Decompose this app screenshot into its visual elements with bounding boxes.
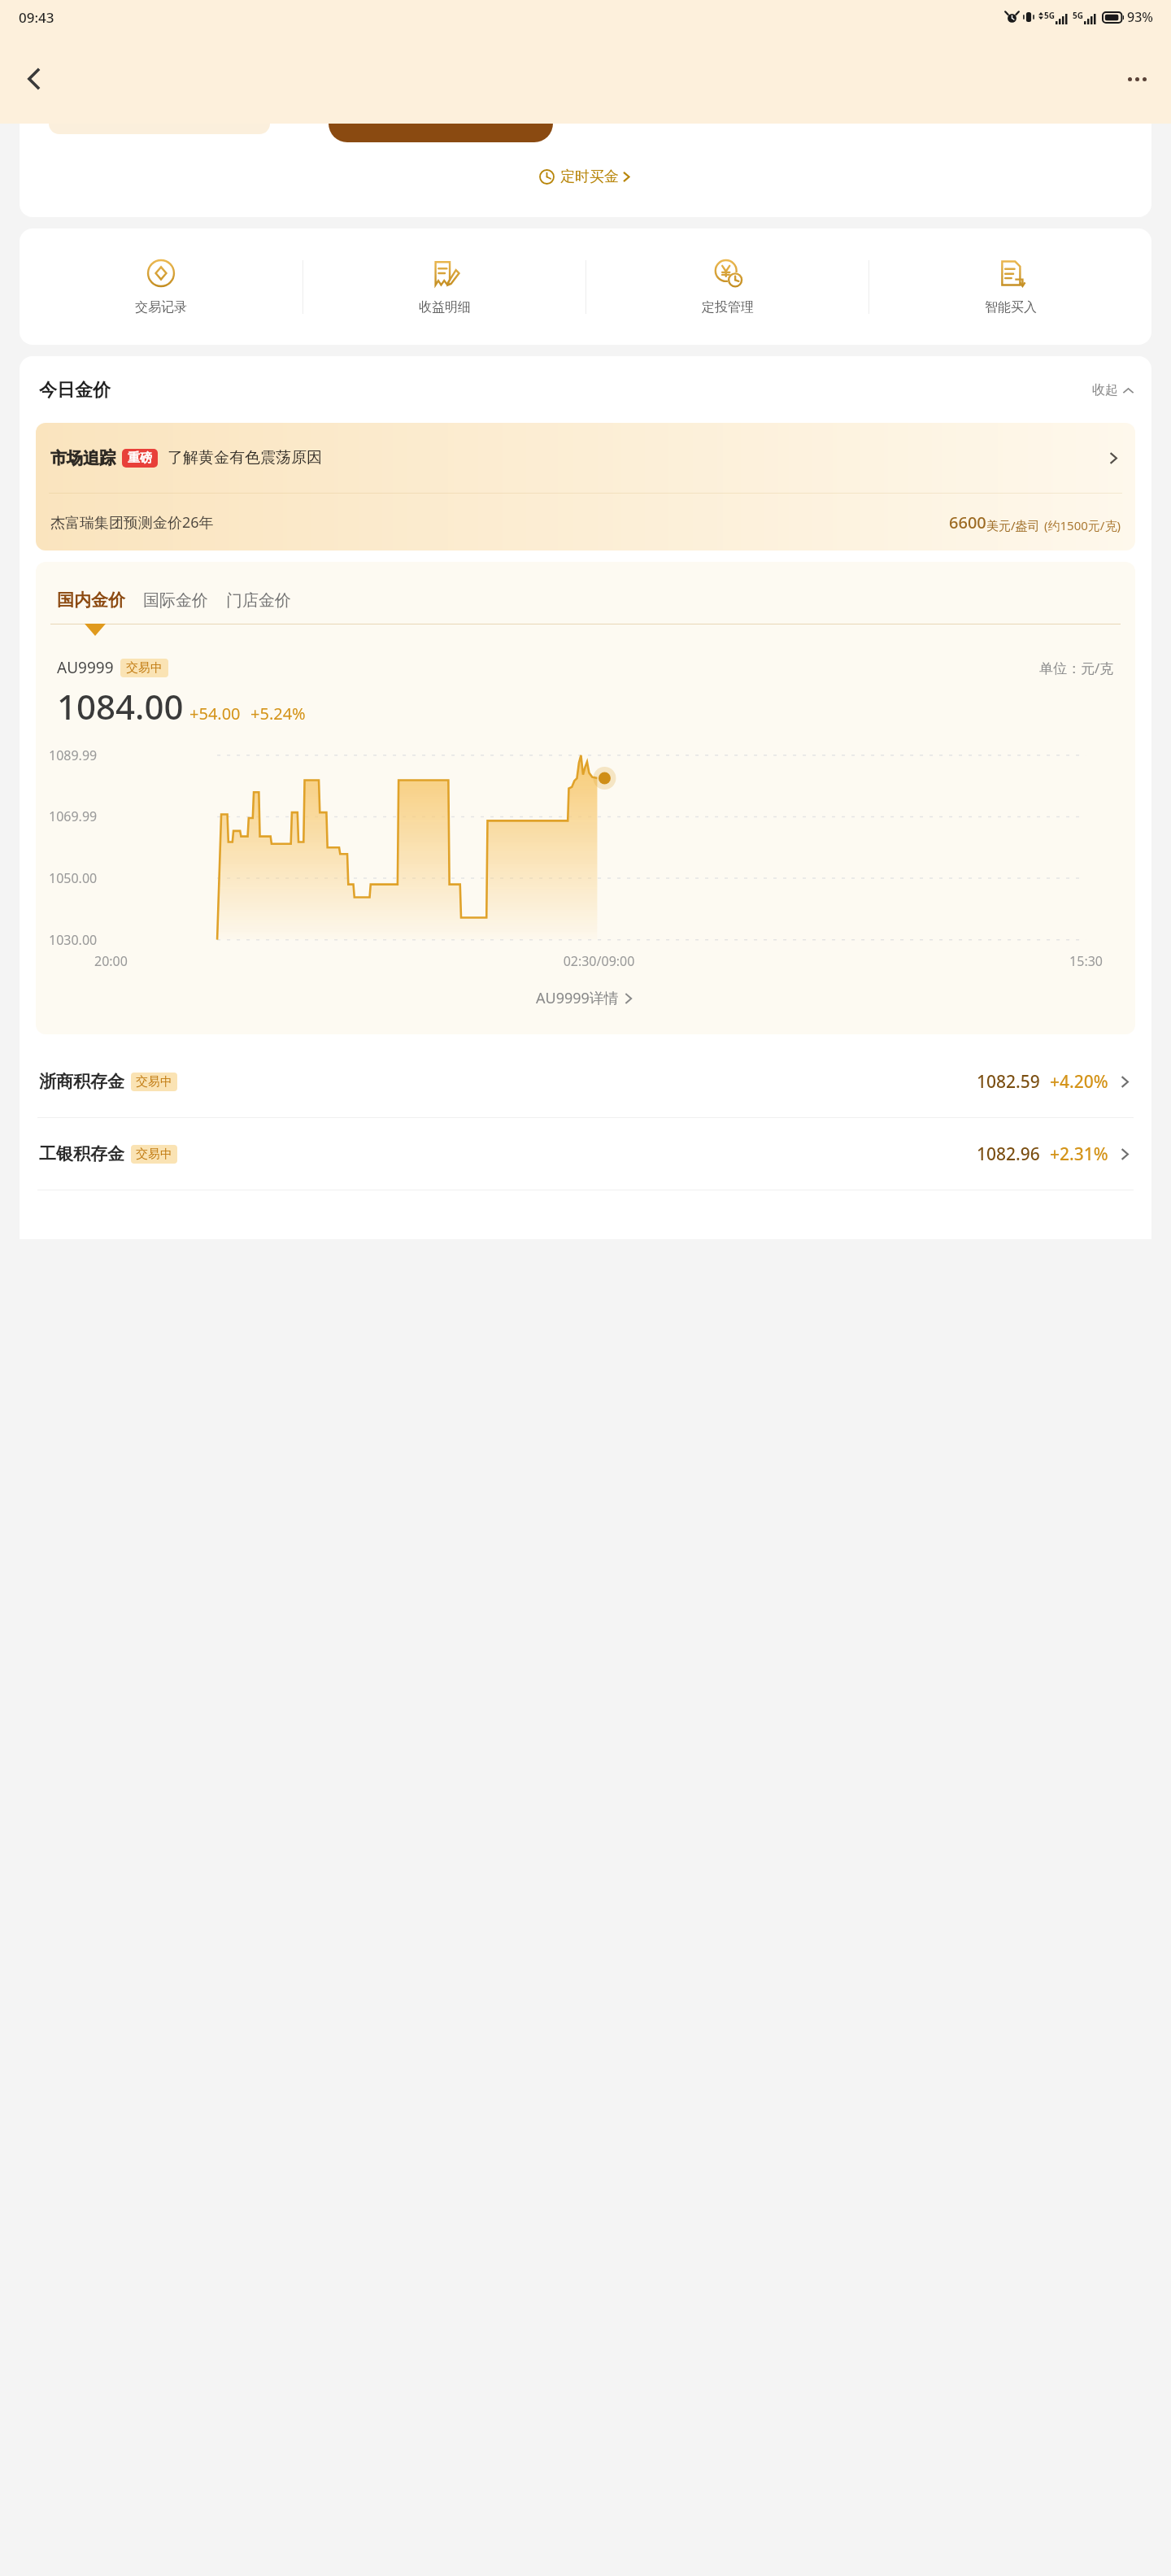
staticText: 收益明细: [419, 299, 471, 315]
staticText: 1050.00: [49, 869, 98, 887]
staticText: 15:30: [767, 952, 1103, 970]
button[interactable]: 国内金价: [57, 590, 125, 611]
staticText: 国际金价: [143, 590, 208, 611]
staticText: 国内金价: [57, 590, 125, 611]
button[interactable]: More options: [1114, 56, 1160, 102]
staticText: 6600: [949, 511, 986, 533]
button[interactable]: 国际金价: [143, 590, 208, 611]
staticText: 交易中: [126, 660, 163, 676]
staticText: AU9999详情: [536, 988, 619, 1008]
staticText: 1030.00: [49, 931, 98, 949]
staticText: 1082.96: [977, 1142, 1040, 1166]
staticText: 定时买金: [560, 168, 619, 186]
button[interactable]: 收起: [1092, 382, 1134, 398]
staticText: 工银积存金: [39, 1143, 124, 1164]
staticText: 今日金价: [39, 379, 111, 402]
staticText: 重磅: [128, 450, 152, 466]
staticText: 1089.99: [49, 746, 98, 764]
button[interactable]: 浙商积存金: [39, 1046, 1132, 1117]
staticText: 20:00: [94, 952, 431, 970]
button[interactable]: Back: [11, 56, 57, 102]
staticText: 浙商积存金: [39, 1071, 124, 1092]
staticText: 09:43: [19, 8, 54, 27]
staticText: 定投管理: [702, 299, 754, 315]
staticText: 5G: [1073, 10, 1083, 21]
staticText: 交易中: [136, 1147, 172, 1162]
staticText: 美元/盎司: [986, 517, 1040, 533]
staticText: 门店金价: [226, 590, 291, 611]
button[interactable]: 工银积存金: [39, 1118, 1132, 1190]
staticText: 交易记录: [135, 299, 187, 315]
staticText: 单位：元/克: [1039, 659, 1114, 677]
staticText: 02:30/09:00: [431, 952, 767, 970]
button[interactable]: 智能买入: [869, 228, 1151, 345]
staticText: 93%: [1127, 8, 1153, 26]
button[interactable]: 定投管理: [586, 228, 868, 345]
staticText: +2.31%: [1050, 1142, 1108, 1166]
staticText: 1082.59: [977, 1070, 1040, 1094]
button[interactable]: 市场追踪: [36, 423, 1135, 550]
staticText: 5G: [1044, 10, 1055, 21]
button[interactable]: 门店金价: [226, 590, 291, 611]
staticText: 收起: [1092, 382, 1118, 398]
staticText: 智能买入: [985, 299, 1037, 315]
staticText: (约1500元/克): [1044, 517, 1121, 533]
staticText: +4.20%: [1050, 1070, 1108, 1094]
staticText: 了解黄金有色震荡原因: [168, 448, 322, 468]
staticText: 杰富瑞集团预测金价26年: [50, 512, 214, 533]
button[interactable]: 收益明细: [303, 228, 585, 345]
staticText: +54.00: [189, 703, 241, 724]
staticText: 市场追踪: [50, 448, 115, 468]
button[interactable]: 定时买金: [539, 168, 633, 186]
staticText: +5.24%: [250, 703, 306, 724]
staticText: 交易中: [136, 1074, 172, 1090]
button[interactable]: AU9999详情: [36, 988, 1135, 1008]
button[interactable]: 交易记录: [20, 228, 303, 345]
staticText: AU9999: [57, 657, 114, 678]
staticText: 1084.00: [57, 683, 184, 729]
staticText: 1069.99: [49, 807, 98, 825]
